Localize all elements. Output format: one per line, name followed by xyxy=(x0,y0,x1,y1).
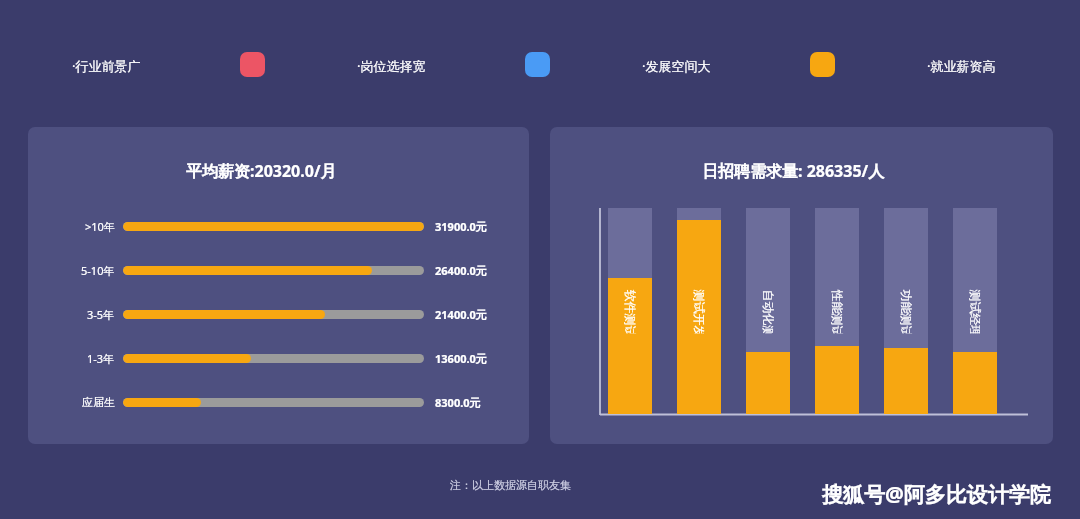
staticText: 日招聘需求量: 286335/人 xyxy=(702,160,885,182)
staticText: >10年 xyxy=(85,219,115,234)
button[interactable]: ·就业薪资高 xyxy=(925,55,998,77)
staticText: 8300.0元 xyxy=(435,395,481,410)
button[interactable]: 日招聘需求量: 286335/人 xyxy=(550,127,1053,444)
button[interactable]: 5-10年 xyxy=(28,256,529,284)
button[interactable]: 性能测试工程师 xyxy=(815,208,859,414)
button[interactable]: 平均薪资:20320.0/月 xyxy=(28,127,529,444)
staticText: 软件测试工程师 xyxy=(622,289,637,333)
staticText: 性能测试工程师 xyxy=(829,289,844,333)
button[interactable]: 测试经理 xyxy=(953,208,997,414)
button[interactable]: >10年 xyxy=(28,212,529,240)
button[interactable]: 功能测试工程师 xyxy=(884,208,928,414)
button[interactable]: 3-5年 xyxy=(28,300,529,328)
button[interactable]: ·发展空间大 xyxy=(640,55,713,77)
staticText: ·发展空间大 xyxy=(642,57,711,75)
staticText: 13600.0元 xyxy=(435,351,487,366)
button[interactable]: Industry prospects marker xyxy=(240,52,265,77)
staticText: 搜狐号@阿多比设计学院 xyxy=(822,480,1051,509)
button[interactable]: Job choice marker xyxy=(525,52,550,77)
button[interactable]: 1-3年 xyxy=(28,344,529,372)
button[interactable]: 测试开发工程师 xyxy=(677,208,721,414)
button[interactable]: 自动化测试工程师 xyxy=(746,208,790,414)
staticText: 1-3年 xyxy=(87,351,115,366)
staticText: 功能测试工程师 xyxy=(898,289,913,333)
staticText: 5-10年 xyxy=(81,263,115,278)
staticText: 3-5年 xyxy=(87,307,115,322)
staticText: 31900.0元 xyxy=(435,219,487,234)
button[interactable]: ·行业前景广 xyxy=(70,55,143,77)
staticText: 注：以上数据源自职友集 xyxy=(450,478,571,492)
staticText: ·就业薪资高 xyxy=(927,57,996,75)
staticText: 平均薪资:20320.0/月 xyxy=(186,160,337,182)
staticText: ·行业前景广 xyxy=(72,57,141,75)
staticText: 测试开发工程师 xyxy=(691,289,706,333)
button[interactable]: Growth space marker xyxy=(810,52,835,77)
staticText: 自动化测试工程师 xyxy=(760,289,775,333)
staticText: 26400.0元 xyxy=(435,263,487,278)
staticText: 测试经理 xyxy=(967,289,982,333)
button[interactable]: ·岗位选择宽 xyxy=(355,55,428,77)
staticText: 应届生 xyxy=(82,395,115,409)
staticText: 21400.0元 xyxy=(435,307,487,322)
button[interactable]: 应届生 xyxy=(28,388,529,416)
button[interactable]: 软件测试工程师 xyxy=(608,208,652,414)
staticText: ·岗位选择宽 xyxy=(357,57,426,75)
